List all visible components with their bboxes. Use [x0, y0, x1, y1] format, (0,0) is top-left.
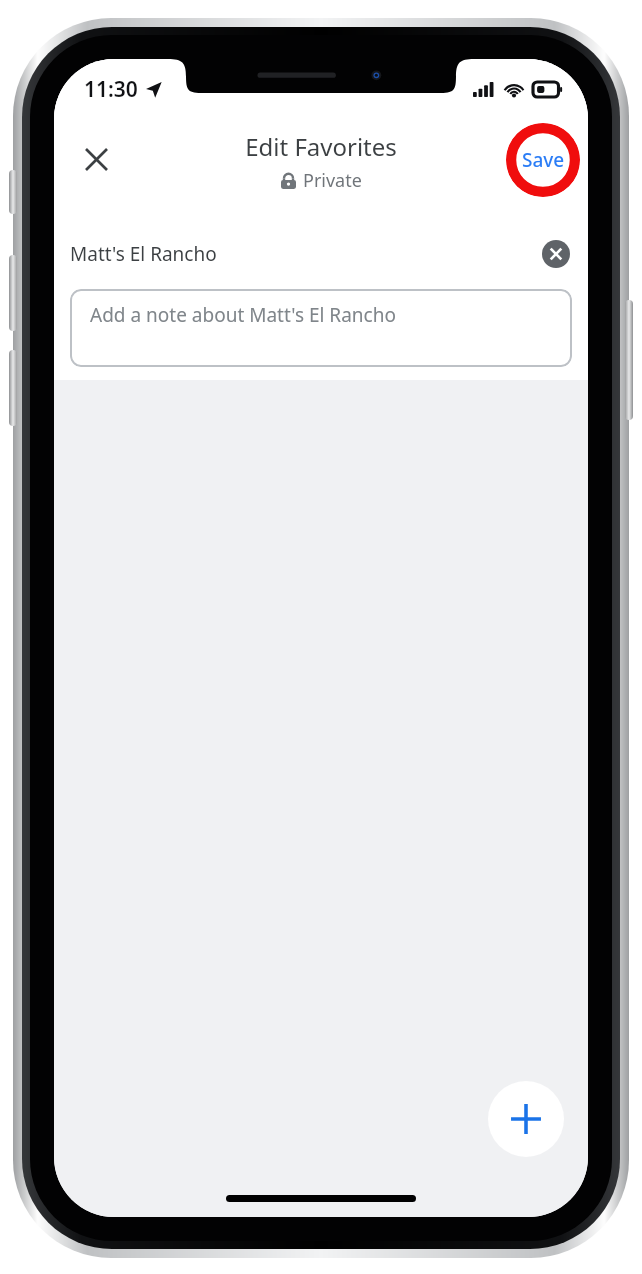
- staticText: Matt's El Rancho: [70, 241, 217, 267]
- button[interactable]: Add favorite: [488, 1081, 564, 1157]
- button[interactable]: Remove Matt's El Rancho: [538, 236, 574, 272]
- staticText: Add a note about Matt's El Rancho: [90, 302, 396, 328]
- button[interactable]: Add a note about Matt's El Rancho: [70, 289, 572, 367]
- button[interactable]: Matt's El Rancho: [54, 231, 588, 277]
- button[interactable]: Save: [506, 123, 580, 197]
- staticText: Edit Favorites: [245, 130, 397, 163]
- staticText: Private: [303, 168, 362, 193]
- staticText: Save: [522, 147, 565, 173]
- staticText: 11:30: [84, 75, 138, 104]
- button[interactable]: Close: [68, 131, 124, 187]
